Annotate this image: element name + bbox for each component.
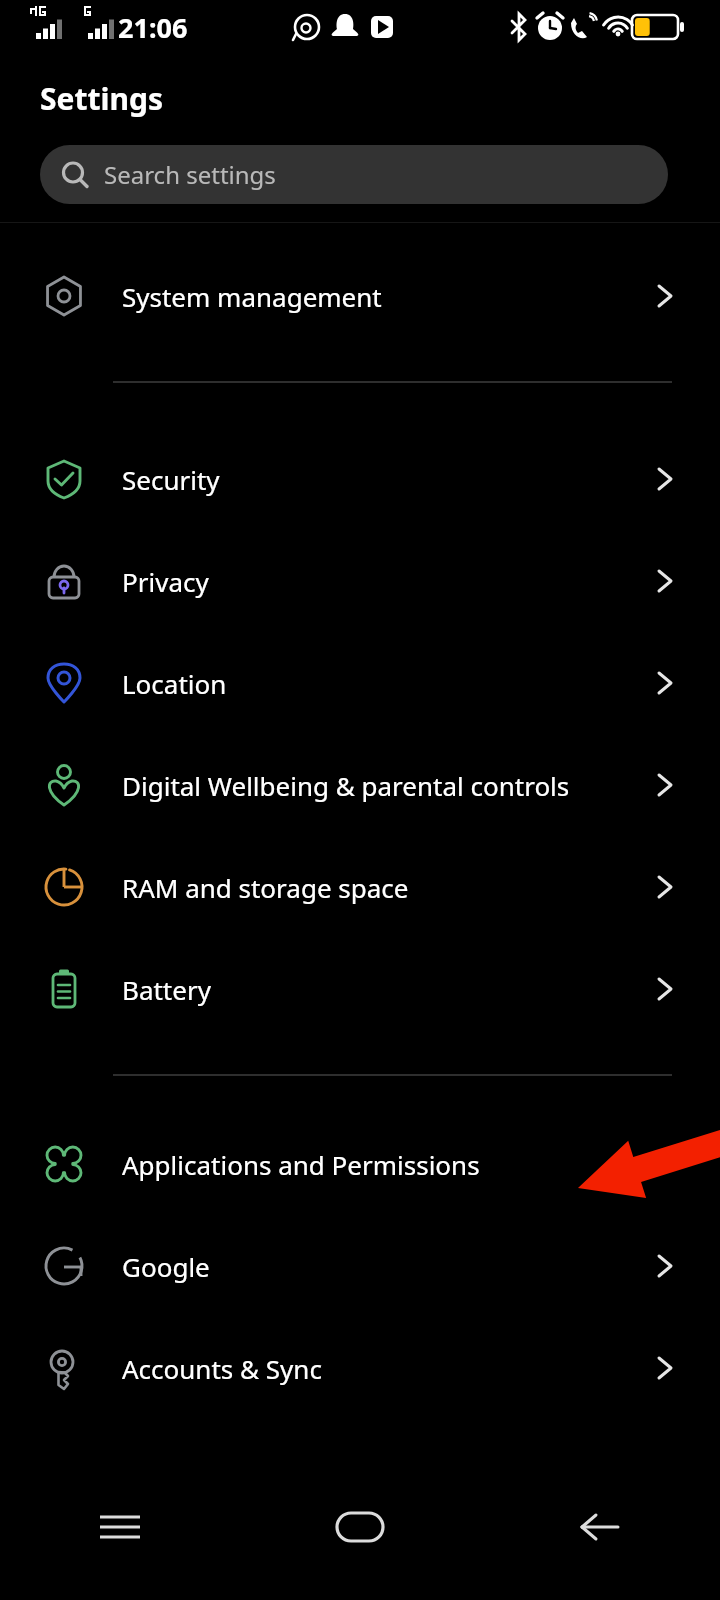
button[interactable]: Google [0, 1215, 720, 1317]
staticText: Battery [122, 972, 648, 1007]
staticText: Settings [40, 78, 163, 119]
staticText: Search settings [104, 158, 276, 191]
button[interactable]: Location [0, 632, 720, 734]
staticText: Digital Wellbeing & parental controls [122, 768, 648, 803]
button[interactable]: System management [0, 245, 720, 347]
button[interactable]: Back [480, 1454, 720, 1600]
staticText: Location [122, 666, 648, 701]
button[interactable]: Home [280, 1454, 440, 1600]
button[interactable]: RAM and storage space [0, 836, 720, 938]
staticText: RAM and storage space [122, 870, 648, 905]
button[interactable]: Security [0, 428, 720, 530]
staticText: 21:06 [118, 9, 188, 46]
staticText: System management [122, 279, 648, 314]
button[interactable]: Digital Wellbeing & parental controls [0, 734, 720, 836]
button[interactable]: Recents [0, 1454, 240, 1600]
staticText: Security [122, 462, 648, 497]
button[interactable]: Applications and Permissions [0, 1113, 720, 1215]
staticText: Google [122, 1249, 648, 1284]
button[interactable]: Battery [0, 938, 720, 1040]
button[interactable]: Search settings [40, 145, 668, 204]
staticText: Applications and Permissions [122, 1147, 648, 1182]
button[interactable]: Privacy [0, 530, 720, 632]
staticText: Accounts & Sync [122, 1351, 648, 1386]
button[interactable]: Accounts & Sync [0, 1317, 720, 1419]
staticText: Privacy [122, 564, 648, 599]
